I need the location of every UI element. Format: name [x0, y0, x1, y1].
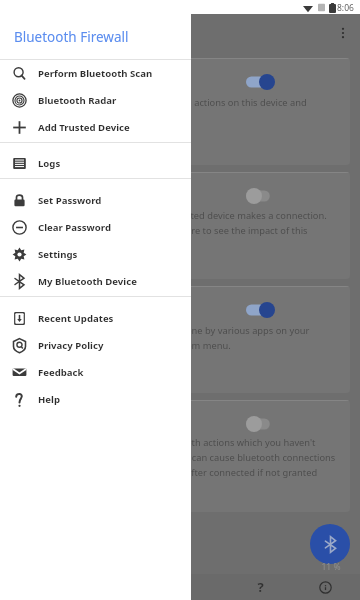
staticText: Settings: [38, 248, 78, 261]
button[interactable]: My Bluetooth Device: [0, 268, 191, 295]
staticText: Logs: [38, 157, 61, 170]
staticText: ere to see the impact of this: [186, 224, 308, 237]
staticText: h actions on this device and: [186, 96, 307, 109]
staticText: Clear Password: [38, 221, 111, 234]
button[interactable]: Perform Bluetooth Scan: [0, 60, 191, 87]
staticText: Help: [38, 393, 60, 406]
staticText: Bluetooth Radar: [38, 94, 117, 107]
button[interactable]: Help: [240, 574, 280, 600]
button[interactable]: Clear Password: [0, 214, 191, 241]
button[interactable]: Help: [0, 386, 191, 413]
button[interactable]: Settings: [0, 241, 191, 268]
staticText: Recent Updates: [38, 312, 114, 325]
staticText: ?: [257, 578, 264, 596]
button[interactable]: Logs: [0, 150, 191, 177]
staticText: Feedback: [38, 366, 84, 379]
button[interactable]: Recent Updates: [0, 305, 191, 332]
staticText: one by various apps on your: [186, 324, 310, 337]
button[interactable]: Set Password: [0, 187, 191, 214]
staticText: Bluetooth Firewall: [14, 28, 129, 46]
button[interactable]: [246, 72, 280, 92]
staticText: 8:06: [337, 2, 354, 14]
staticText: t can cause bluetooth connections: [186, 451, 336, 464]
staticText: Add Trusted Device: [38, 121, 130, 134]
button[interactable]: [246, 414, 280, 434]
staticText: om menu.: [186, 339, 231, 352]
button[interactable]: Bluetooth: [310, 524, 350, 564]
button[interactable]: Bluetooth Firewall: [0, 14, 191, 60]
button[interactable]: [246, 186, 280, 206]
button[interactable]: [246, 300, 280, 320]
staticText: Set Password: [38, 194, 102, 207]
staticText: 11 %: [316, 561, 346, 573]
staticText: Privacy Policy: [38, 339, 104, 352]
staticText: My Bluetooth Device: [38, 275, 137, 288]
staticText: oth actions which you haven't: [186, 436, 316, 449]
button[interactable]: More options: [330, 20, 356, 46]
staticText: after connected if not granted: [186, 466, 318, 479]
button[interactable]: Feedback: [0, 359, 191, 386]
staticText: sted device makes a connection.: [186, 209, 327, 222]
button[interactable]: Info: [305, 574, 345, 600]
staticText: Perform Bluetooth Scan: [38, 67, 153, 80]
button[interactable]: Bluetooth Radar: [0, 87, 191, 114]
button[interactable]: Add Trusted Device: [0, 114, 191, 141]
button[interactable]: Privacy Policy: [0, 332, 191, 359]
